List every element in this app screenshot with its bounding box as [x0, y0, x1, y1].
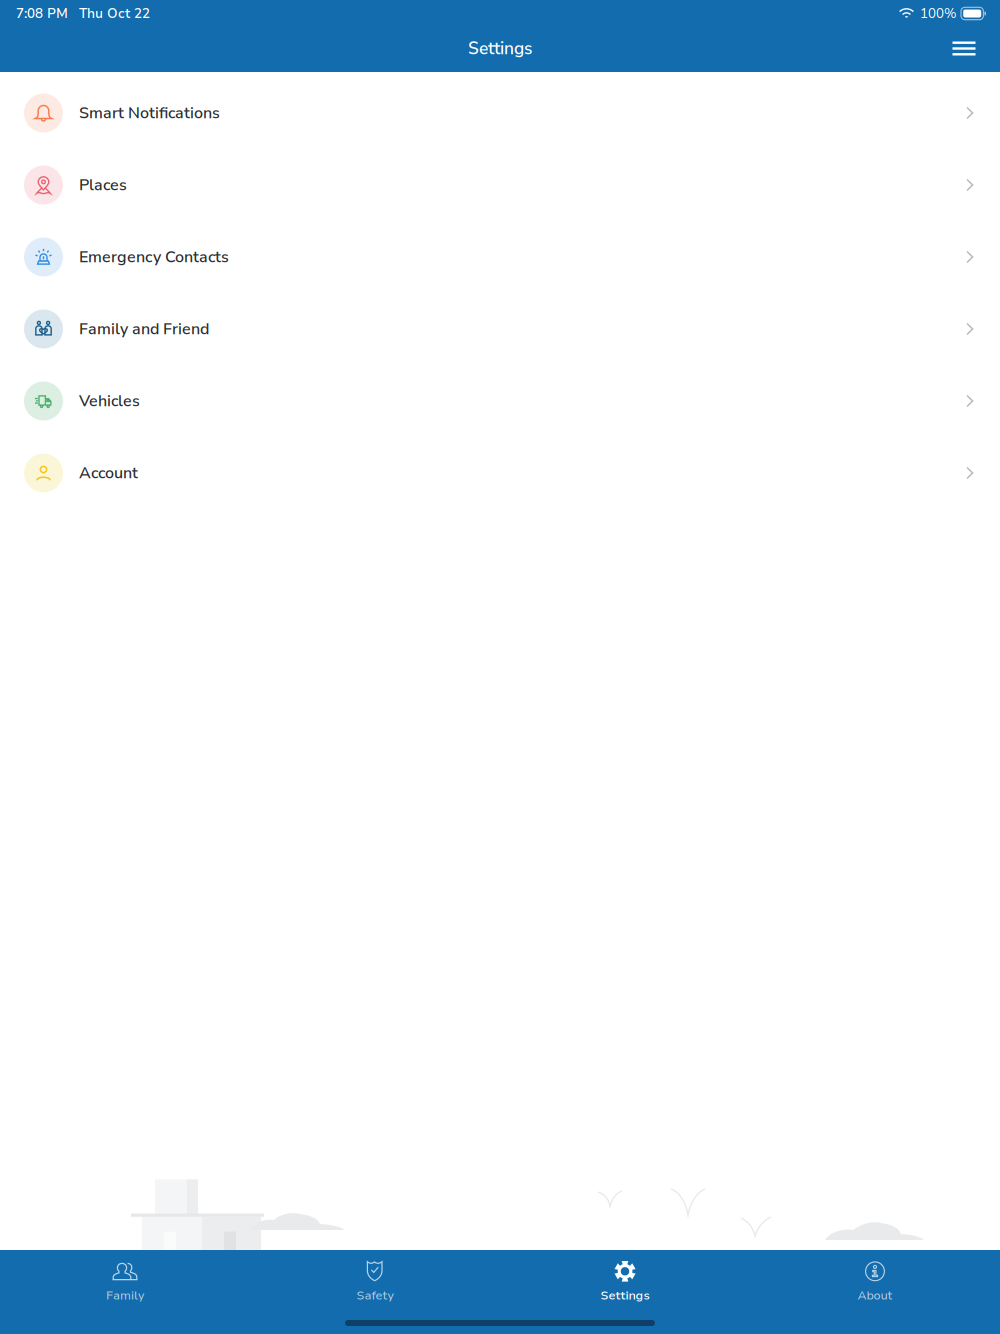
button[interactable]: Family [0, 1250, 250, 1308]
button[interactable]: About [750, 1250, 1000, 1308]
button[interactable]: Emergency Contacts [0, 221, 1000, 293]
staticText: 100% [920, 4, 957, 23]
button[interactable]: Family and Friend [0, 293, 1000, 365]
button[interactable]: Vehicles [0, 365, 1000, 437]
staticText: Places [79, 174, 127, 196]
staticText: Family and Friend [79, 318, 209, 340]
button[interactable]: Menu [941, 29, 987, 67]
staticText: About [857, 1287, 892, 1304]
button[interactable]: Smart Notifications [0, 77, 1000, 149]
staticText: Safety [356, 1287, 393, 1304]
button[interactable]: Safety [250, 1250, 500, 1308]
button[interactable]: Account [0, 437, 1000, 509]
staticText: Family [106, 1287, 144, 1304]
button[interactable]: Places [0, 149, 1000, 221]
staticText: 7:08 PM [16, 4, 68, 23]
button[interactable]: Settings [500, 1250, 750, 1308]
staticText: Settings [468, 37, 532, 60]
staticText: Thu Oct 22 [79, 4, 150, 23]
staticText: Smart Notifications [79, 102, 220, 124]
staticText: Emergency Contacts [79, 246, 229, 268]
staticText: Vehicles [79, 390, 140, 412]
staticText: Account [79, 462, 138, 484]
staticText: Settings [600, 1287, 649, 1304]
